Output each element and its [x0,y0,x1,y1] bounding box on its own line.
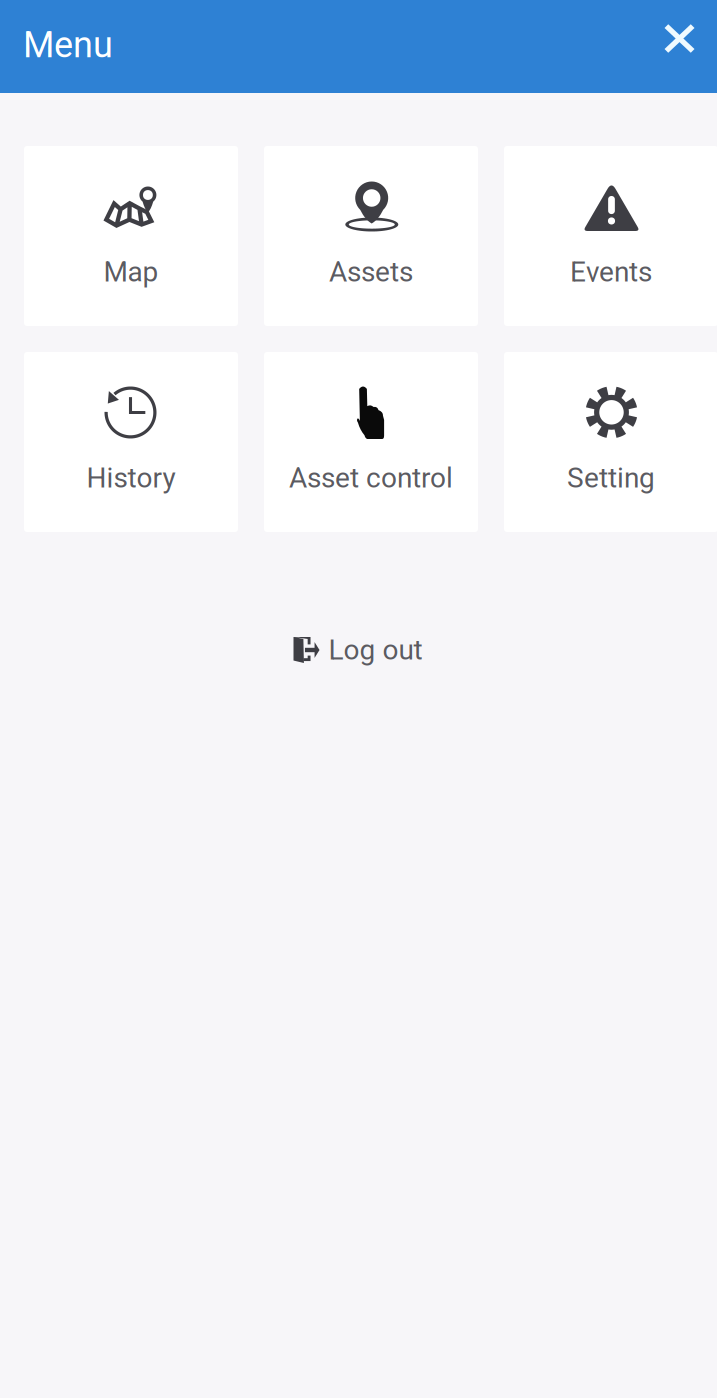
staticText: History [86,462,175,494]
button[interactable]: History [24,352,238,532]
button[interactable]: Map [24,146,238,326]
button[interactable]: Assets [264,146,478,326]
staticText: Menu [23,24,113,66]
button[interactable]: Close [648,8,710,69]
staticText: Events [570,256,652,288]
staticText: Setting [567,462,655,494]
staticText: Log out [328,634,422,666]
button[interactable]: Events [504,146,717,326]
button[interactable]: Setting [504,352,717,532]
staticText: Map [103,256,158,288]
staticText: Assets [329,256,413,288]
button[interactable]: Asset control [264,352,478,532]
button[interactable]: Log out [287,628,428,672]
staticText: Asset control [289,462,453,494]
